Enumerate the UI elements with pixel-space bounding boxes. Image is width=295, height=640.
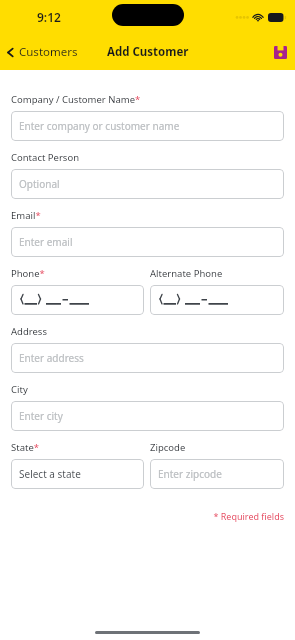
staticText: Optional (19, 177, 60, 191)
button[interactable]: Customers (0, 39, 84, 65)
staticText: Select a state (19, 467, 81, 481)
button[interactable]: Select a state (11, 459, 144, 489)
button[interactable]: Enter company or customer name (11, 111, 284, 141)
staticText: Alternate Phone (150, 267, 223, 280)
staticText: Phone* (11, 267, 45, 280)
button[interactable] (150, 285, 284, 315)
staticText: Enter email (19, 235, 73, 249)
staticText: Enter zipcode (158, 467, 222, 481)
button[interactable]: Enter zipcode (150, 459, 284, 489)
button[interactable] (11, 285, 144, 315)
staticText: Enter address (19, 351, 84, 365)
staticText: Address (11, 325, 47, 338)
staticText: Add Customer (107, 44, 189, 60)
staticText: Enter city (19, 409, 63, 423)
staticText: Customers (19, 44, 78, 60)
staticText: Zipcode (150, 441, 186, 454)
staticText: Enter company or customer name (19, 119, 180, 133)
staticText: Contact Person (11, 151, 80, 164)
staticText: City (11, 383, 28, 396)
button[interactable]: Enter address (11, 343, 284, 373)
button[interactable]: Save (266, 39, 295, 66)
staticText: Email* (11, 209, 41, 222)
button[interactable]: Optional (11, 169, 284, 199)
button[interactable]: Enter email (11, 227, 284, 257)
staticText: State* (11, 441, 39, 454)
staticText: 9:12 (37, 9, 61, 25)
staticText: Company / Customer Name* (11, 93, 141, 106)
button[interactable]: Enter city (11, 401, 284, 431)
staticText: * Required fields (11, 510, 284, 522)
